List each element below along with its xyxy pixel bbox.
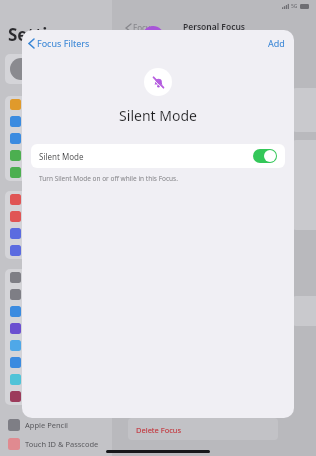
staticText: Silent Mode <box>39 151 84 162</box>
staticText: Add <box>268 37 285 49</box>
staticText: Apple Pencil <box>25 420 69 430</box>
button[interactable]: Focus Filters <box>22 30 96 56</box>
staticText: Delete Focus <box>136 425 182 435</box>
staticText: Focus Filters <box>37 37 90 49</box>
staticText: Touch ID & Passcode <box>25 439 99 449</box>
staticText: Focus <box>133 22 155 33</box>
staticText: Turn Silent Mode on or off while in this… <box>39 174 178 183</box>
staticText: Silent Mode <box>22 106 294 125</box>
staticText: 5G <box>291 3 298 10</box>
staticText: Delete Focus <box>136 425 182 435</box>
other: Silent Mode <box>152 76 165 89</box>
button[interactable]: Add <box>259 30 294 56</box>
staticText: Settings <box>8 23 78 46</box>
staticText: Personal Focus <box>183 21 246 33</box>
button[interactable]: Silent Mode <box>31 144 285 168</box>
